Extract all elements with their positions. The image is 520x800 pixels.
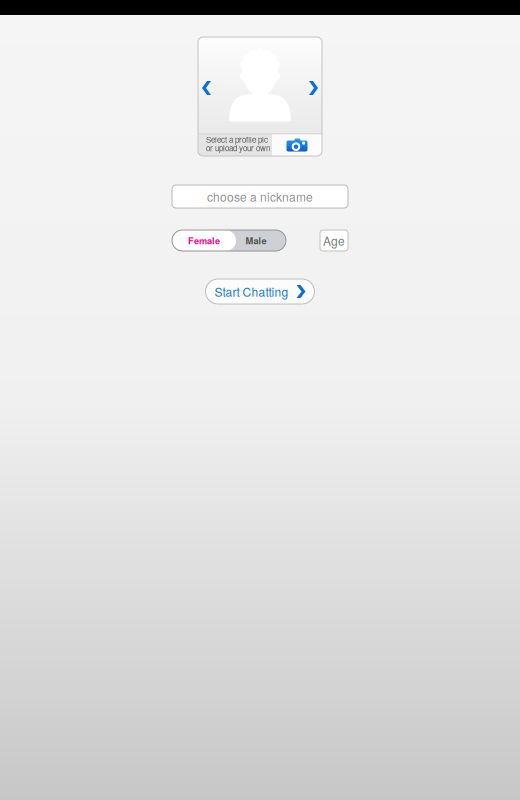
button[interactable]: Previous picture — [198, 68, 219, 102]
button[interactable]: Age — [320, 230, 348, 251]
button[interactable]: Male — [236, 230, 286, 251]
staticText: or upload your own — [206, 142, 270, 153]
button[interactable]: Female — [172, 230, 236, 251]
button[interactable]: Take a photo — [272, 134, 322, 156]
staticText: choose a nickname — [207, 188, 313, 205]
staticText: Female — [188, 234, 220, 247]
button[interactable]: choose a nickname — [172, 185, 348, 208]
button[interactable]: Next picture — [301, 68, 322, 102]
staticText: Select a profile pic — [206, 133, 268, 145]
staticText: Start Chatting — [214, 283, 288, 300]
staticText: Age — [323, 232, 345, 249]
button[interactable]: Start Chatting — [205, 279, 314, 304]
staticText: Male — [245, 234, 266, 247]
